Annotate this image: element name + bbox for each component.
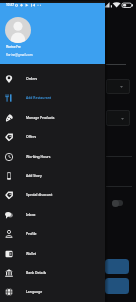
button[interactable]: Primary action (105, 259, 129, 274)
staticText: Bank Details (26, 270, 47, 275)
button[interactable]: Toggle (112, 200, 123, 206)
button[interactable]: Manage Products (0, 108, 105, 127)
button[interactable]: Bank Details (0, 263, 105, 282)
staticText: Inbox (26, 212, 36, 217)
button[interactable]: Secondary action (105, 278, 129, 294)
button[interactable]: Dropdown (106, 79, 130, 94)
staticText: Add Restaurant (26, 95, 52, 100)
button[interactable]: Dropdown (106, 110, 130, 126)
button[interactable]: Profile (0, 224, 105, 243)
button[interactable]: Add Restaurant (0, 88, 105, 107)
button[interactable]: Language (0, 282, 105, 301)
button[interactable]: Orders (0, 69, 105, 88)
button[interactable]: Special discount (0, 185, 105, 204)
button[interactable]: Wallet (0, 244, 105, 263)
staticText: Manage Products (26, 115, 55, 120)
staticText: Language (26, 289, 43, 294)
staticText: Working Hours (26, 154, 51, 159)
button[interactable]: Inbox (0, 205, 105, 224)
staticText: Florine Fre (6, 45, 21, 49)
staticText: Offers (26, 134, 37, 139)
staticText: 10:37 (6, 3, 15, 7)
staticText: Add Story (26, 173, 42, 178)
staticText: Wallet (26, 251, 37, 256)
button[interactable]: Add Story (0, 166, 105, 185)
staticText: Orders (26, 76, 38, 81)
button[interactable]: Working Hours (0, 147, 105, 166)
staticText: Profile (26, 231, 37, 236)
button[interactable]: Offers (0, 127, 105, 146)
staticText: Special discount (26, 192, 53, 197)
staticText: florine@gmail.com (6, 53, 33, 57)
